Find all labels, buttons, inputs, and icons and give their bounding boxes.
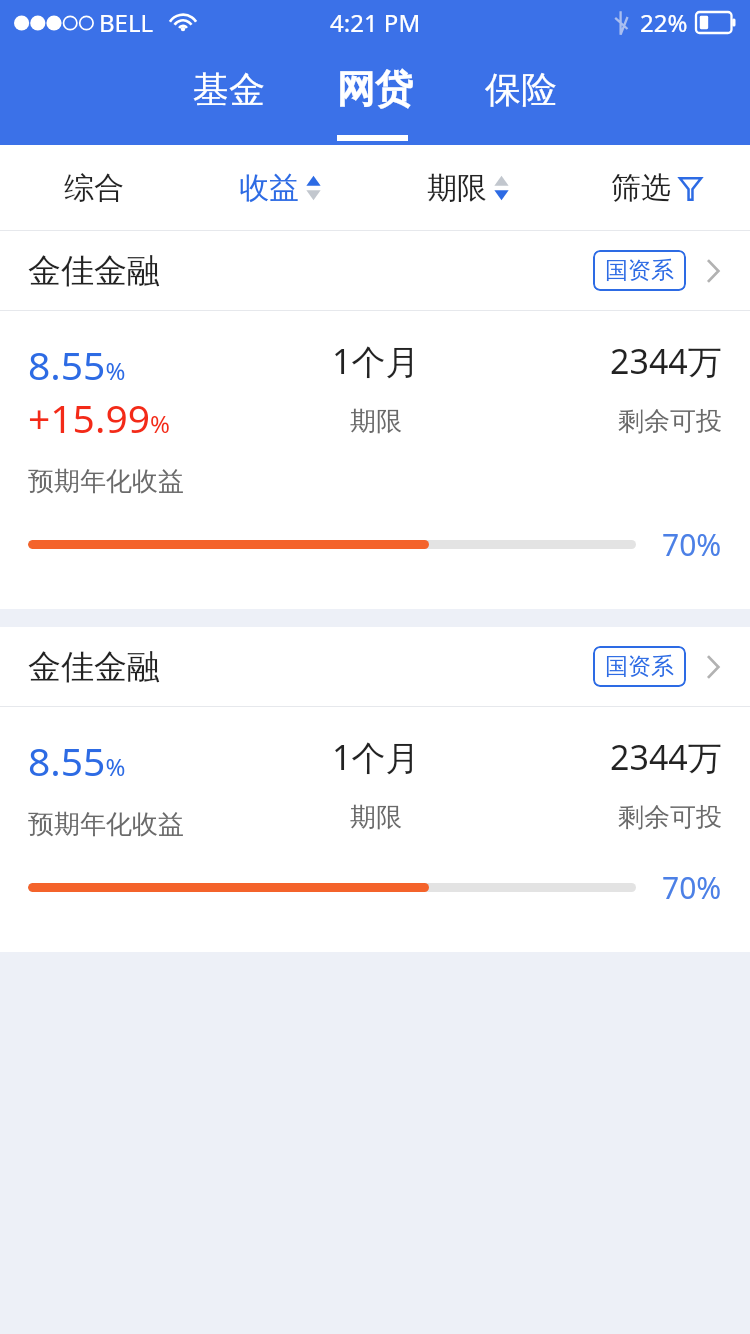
button[interactable]: 基金 bbox=[186, 45, 272, 145]
staticText: 8.55% bbox=[28, 734, 126, 787]
staticText: 2344万 bbox=[610, 338, 722, 384]
staticText: 收益 bbox=[239, 169, 299, 207]
staticText: 1个月 bbox=[332, 734, 420, 780]
staticText: 1个月 bbox=[332, 338, 420, 384]
staticText: 70% bbox=[662, 867, 722, 908]
staticText: BELL bbox=[99, 6, 154, 39]
staticText: 22% bbox=[640, 6, 688, 39]
staticText: 国资系 bbox=[605, 652, 674, 681]
staticText: 预期年化收益 bbox=[28, 465, 184, 498]
staticText: 金佳金融 bbox=[28, 250, 160, 292]
button[interactable]: 保险 bbox=[478, 45, 564, 145]
staticText: 国资系 bbox=[605, 256, 674, 285]
staticText: 预期年化收益 bbox=[28, 808, 184, 841]
button[interactable]: 查看详情 bbox=[698, 253, 728, 289]
staticText: 保险 bbox=[485, 67, 557, 112]
staticText: 基金 bbox=[193, 67, 265, 112]
staticText: 2344万 bbox=[610, 734, 722, 780]
button[interactable]: 筛选 bbox=[562, 145, 750, 230]
staticText: 综合 bbox=[64, 169, 124, 207]
staticText: 70% bbox=[662, 524, 722, 565]
staticText: 8.55%+15.99% bbox=[28, 338, 260, 444]
button[interactable]: 期限 bbox=[374, 145, 562, 230]
staticText: 筛选 bbox=[611, 169, 671, 207]
button[interactable]: 收益 bbox=[187, 145, 374, 230]
staticText: 剩余可投 bbox=[618, 405, 722, 438]
button[interactable]: 网贷 bbox=[332, 45, 418, 145]
button[interactable]: 金佳金融 bbox=[0, 627, 750, 706]
staticText: 期限 bbox=[350, 801, 402, 834]
staticText: 期限 bbox=[350, 405, 402, 438]
staticText: 金佳金融 bbox=[28, 646, 160, 688]
staticText: 4:21 PM bbox=[330, 6, 421, 39]
button[interactable]: 查看详情 bbox=[698, 649, 728, 685]
staticText: 剩余可投 bbox=[618, 801, 722, 834]
staticText: 网贷 bbox=[337, 65, 413, 113]
staticText: 期限 bbox=[427, 169, 487, 207]
button[interactable]: 金佳金融 bbox=[0, 231, 750, 310]
button[interactable]: 综合 bbox=[0, 145, 187, 230]
